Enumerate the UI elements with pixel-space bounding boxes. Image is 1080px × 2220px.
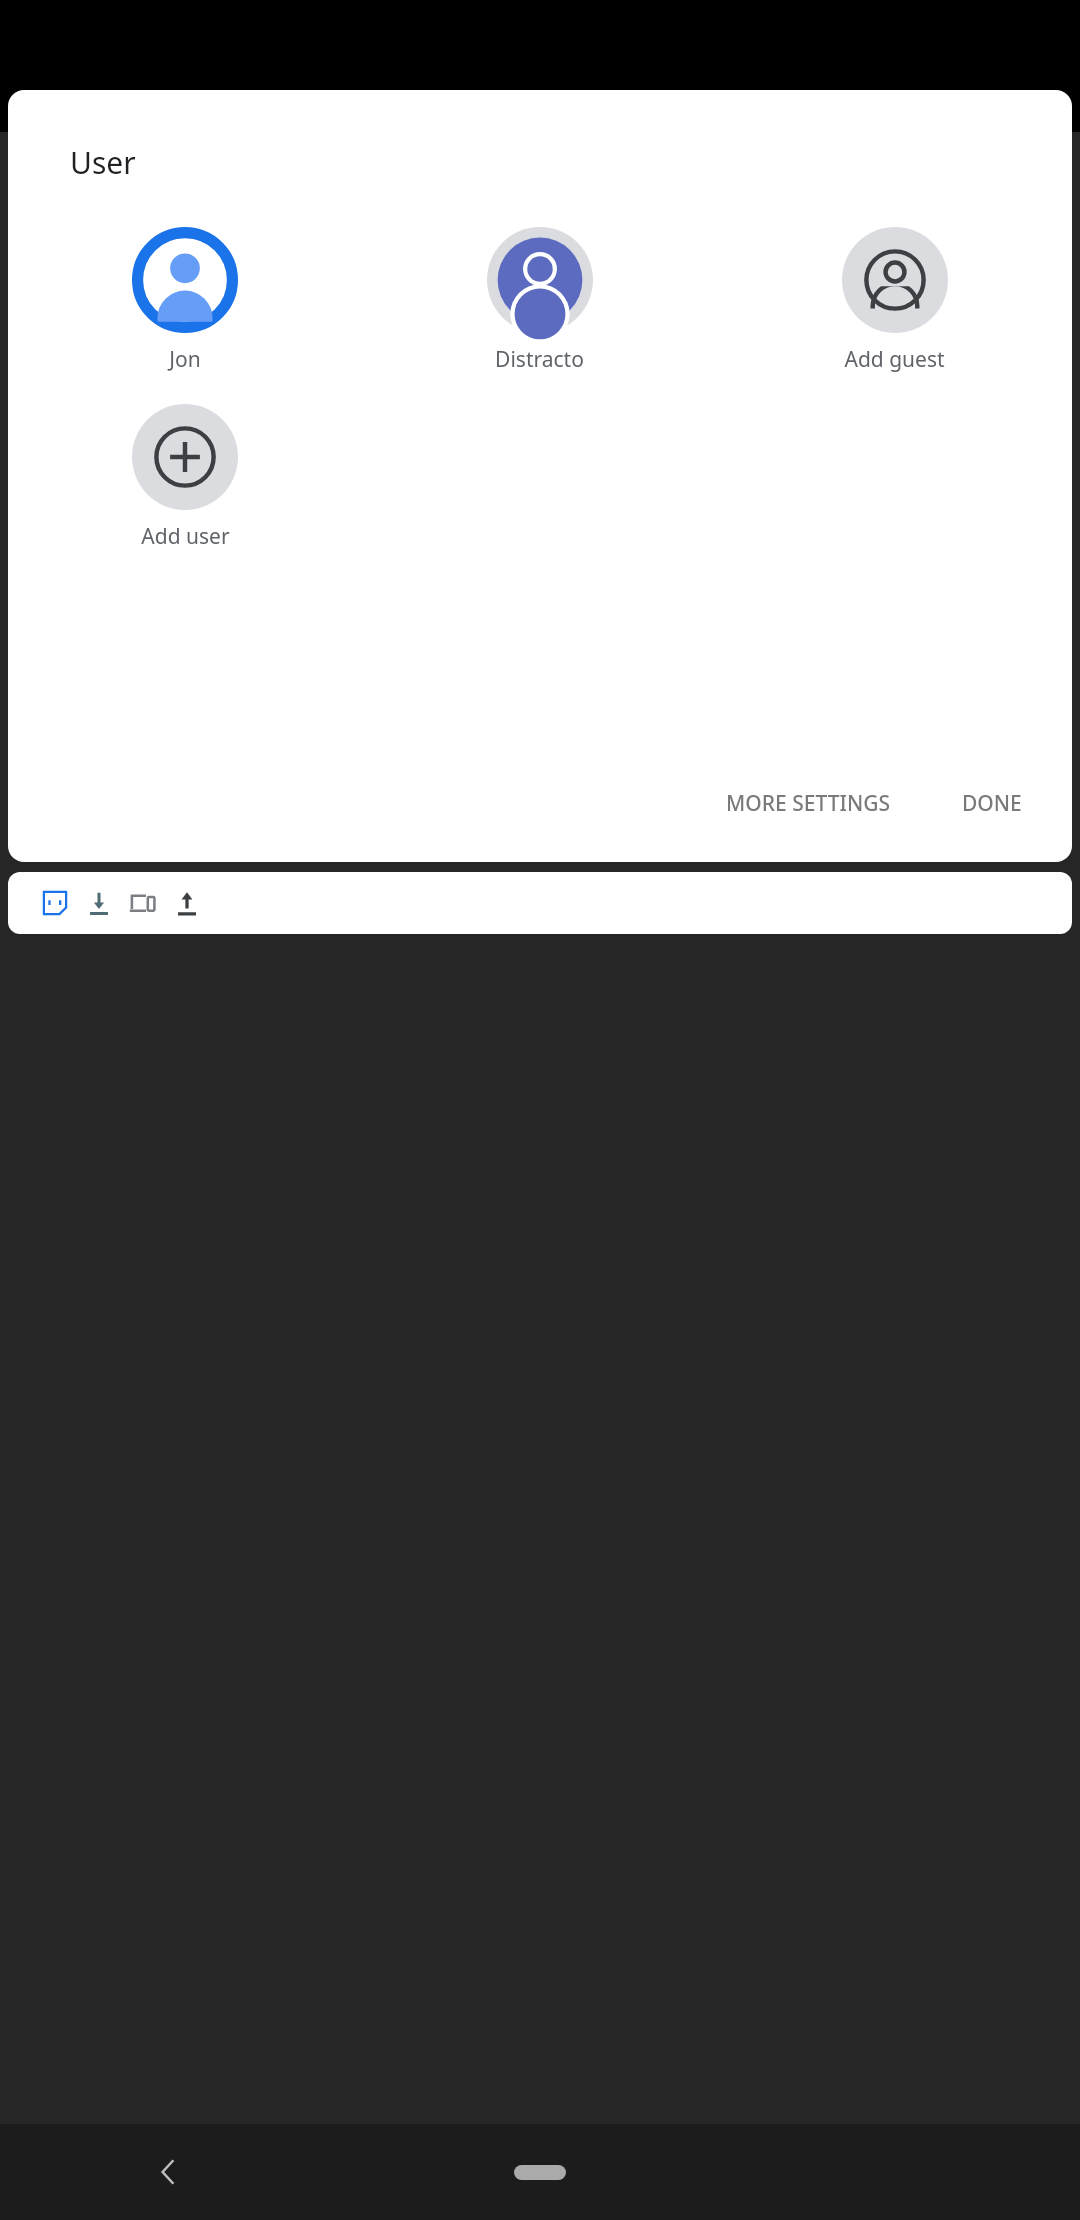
button[interactable]: Home [514, 2165, 566, 2180]
button[interactable]: Jon [8, 223, 362, 378]
staticText: Jon [169, 345, 201, 374]
staticText: Distracto [495, 345, 584, 374]
button[interactable]: Distracto [362, 223, 717, 378]
staticText: MORE SETTINGS [726, 789, 890, 818]
staticText: User [70, 142, 136, 183]
button[interactable]: Add user [8, 400, 362, 555]
button[interactable]: MORE SETTINGS [716, 779, 900, 828]
staticText: Add user [141, 522, 230, 551]
other: Download [84, 888, 114, 918]
button[interactable]: Calendar [8, 872, 1072, 934]
other: Calendar [40, 888, 70, 918]
button[interactable]: DONE [952, 779, 1032, 828]
staticText: Add guest [844, 345, 945, 374]
staticText: DONE [962, 789, 1022, 818]
other: Upload [172, 888, 202, 918]
button[interactable]: Add guest [717, 223, 1072, 378]
button[interactable]: Back [140, 2144, 196, 2200]
other: Cast devices [128, 888, 158, 918]
